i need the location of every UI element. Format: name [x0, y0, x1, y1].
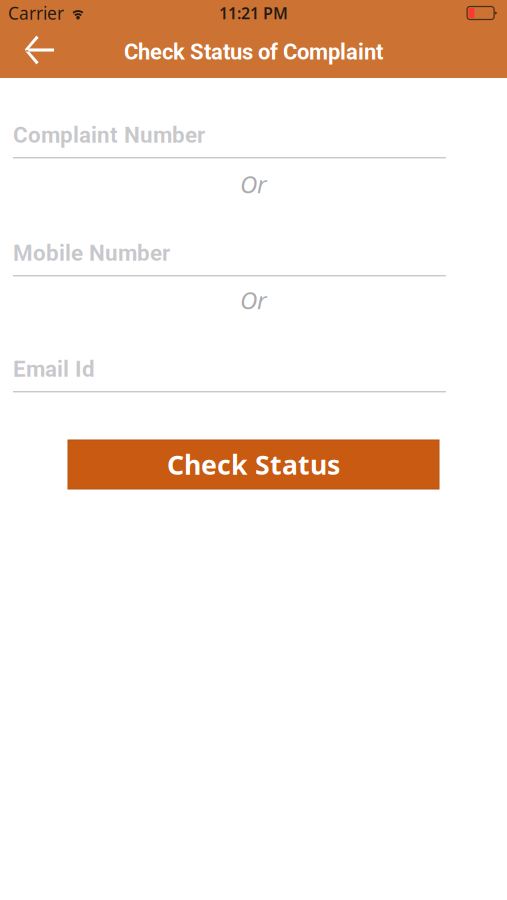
button[interactable]: Complaint Number: [13, 122, 446, 159]
staticText: Check Status of Complaint: [124, 39, 383, 65]
staticText: Check Status: [167, 447, 340, 482]
staticText: Carrier: [8, 1, 64, 24]
button[interactable]: Email Id: [13, 356, 446, 393]
staticText: Email Id: [13, 356, 95, 382]
staticText: Or: [240, 168, 267, 200]
staticText: Or: [240, 284, 267, 316]
button[interactable]: Check Status: [68, 440, 439, 489]
staticText: Mobile Number: [13, 240, 170, 266]
staticText: 11:21 PM: [219, 2, 288, 24]
button[interactable]: Mobile Number: [13, 240, 446, 277]
staticText: Complaint Number: [13, 122, 205, 148]
button[interactable]: Back: [0, 26, 55, 78]
